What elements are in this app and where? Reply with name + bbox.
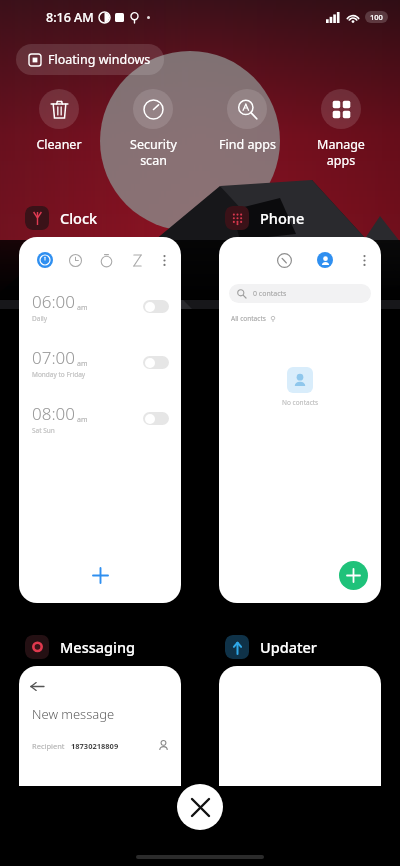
staticText: Daily: [32, 314, 48, 323]
button[interactable]: Updater: [225, 635, 317, 659]
button[interactable]: Add contact: [339, 561, 368, 590]
staticText: 100: [370, 12, 383, 22]
staticText: No contacts: [282, 398, 319, 407]
button[interactable]: Cleaner: [16, 89, 102, 153]
button[interactable]: Security scan: [110, 89, 196, 168]
button[interactable]: Close all: [177, 784, 223, 830]
button[interactable]: 06:00: [19, 237, 181, 603]
staticText: am: [77, 303, 88, 313]
button[interactable]: Find apps: [204, 89, 290, 153]
button[interactable]: 0 contacts: [219, 237, 381, 603]
staticText: 06:00: [32, 290, 75, 313]
button[interactable]: 0 contacts: [229, 284, 371, 303]
button[interactable]: [219, 666, 381, 786]
staticText: New message: [32, 705, 115, 723]
staticText: Cleaner: [36, 136, 82, 153]
button[interactable]: Messaging: [25, 635, 136, 659]
staticText: 08:00: [32, 402, 75, 425]
staticText: am: [77, 415, 88, 425]
staticText: Find apps: [219, 136, 276, 153]
staticText: 0 contacts: [253, 289, 287, 299]
button[interactable]: [143, 300, 169, 313]
staticText: Sat Sun: [32, 426, 55, 435]
staticText: 07:00: [32, 346, 75, 369]
staticText: am: [77, 359, 88, 369]
staticText: 18730218809: [71, 741, 119, 751]
button[interactable]: Clock: [25, 206, 98, 230]
staticText: Manage apps: [317, 136, 365, 168]
button[interactable]: Manage apps: [298, 89, 384, 168]
staticText: Clock: [60, 208, 98, 228]
button[interactable]: Floating windows: [16, 44, 164, 75]
staticText: All contacts: [231, 314, 266, 323]
staticText: Recipient: [32, 741, 65, 751]
staticText: Security scan: [130, 136, 177, 168]
button[interactable]: [143, 356, 169, 369]
staticText: 8:16 AM: [46, 9, 94, 26]
staticText: Monday to Friday: [32, 370, 86, 379]
button[interactable]: Phone: [225, 206, 305, 230]
button[interactable]: [143, 412, 169, 425]
staticText: Messaging: [60, 637, 136, 657]
staticText: Floating windows: [48, 51, 151, 68]
staticText: Updater: [260, 637, 317, 657]
staticText: Phone: [260, 208, 305, 228]
button[interactable]: New message: [19, 666, 181, 786]
